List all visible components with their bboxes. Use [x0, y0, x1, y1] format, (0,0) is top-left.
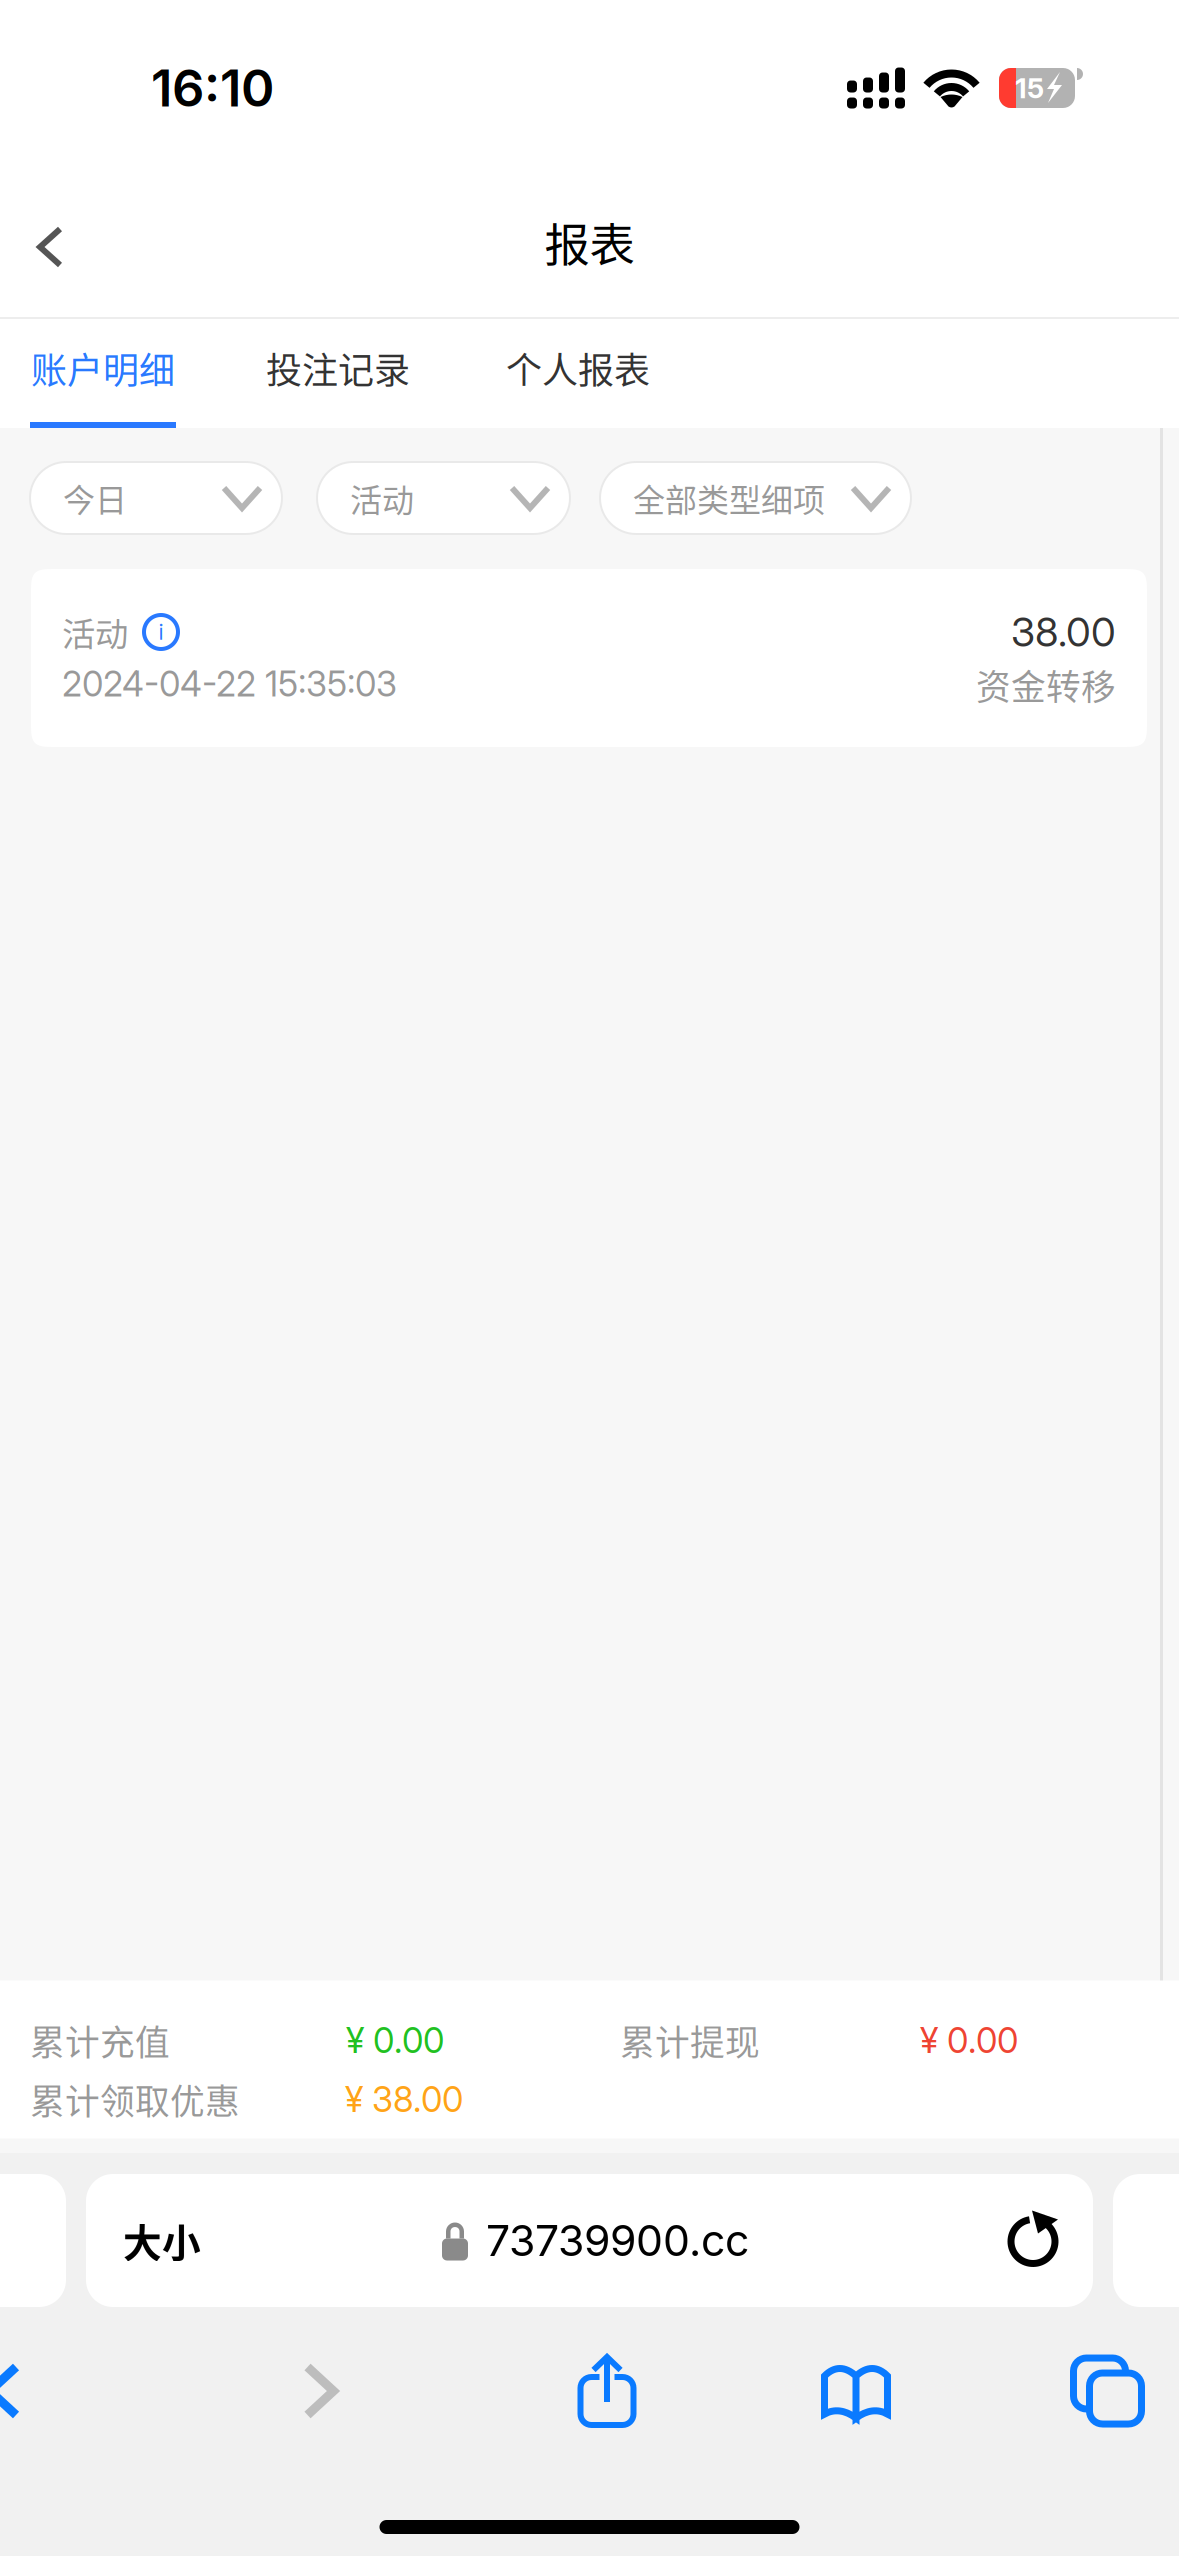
button[interactable]: Bookmarks — [731, 2331, 981, 2451]
staticText: 2024-04-22 15:35:03 — [62, 663, 397, 705]
staticText: 15 — [1015, 71, 1044, 105]
staticText: ¥ 38.00 — [345, 2078, 463, 2120]
staticText: 16:10 — [151, 57, 274, 119]
staticText: 个人报表 — [506, 342, 650, 394]
button[interactable]: 投注记录 — [265, 319, 411, 428]
button[interactable]: 账户明细 — [30, 319, 176, 428]
button[interactable]: Share — [483, 2331, 731, 2451]
button[interactable]: Back — [0, 197, 100, 297]
staticText: 全部类型细项 — [633, 475, 825, 521]
button[interactable]: Forward — [158, 2331, 483, 2451]
staticText: ¥ 0.00 — [920, 2019, 1018, 2061]
staticText: 资金转移 — [976, 660, 1116, 710]
staticText: 大小 — [123, 2212, 201, 2268]
staticText: 累计提现 — [620, 2015, 760, 2066]
staticText: 活动 — [350, 475, 414, 521]
staticText: 累计领取优惠 — [30, 2074, 240, 2125]
staticText: ¥ 0.00 — [346, 2019, 444, 2061]
staticText: 今日 — [63, 475, 127, 521]
button[interactable]: 个人报表 — [505, 319, 651, 428]
button[interactable]: 大小 — [86, 2174, 1093, 2307]
staticText: 累计充值 — [30, 2015, 170, 2066]
staticText: 活动 — [62, 608, 128, 656]
button[interactable]: Tabs — [981, 2331, 1179, 2451]
staticText: 报表 — [544, 209, 634, 275]
button[interactable]: Back — [0, 2331, 158, 2451]
staticText: i — [158, 619, 163, 645]
staticText: 投注记录 — [266, 342, 410, 394]
staticText: 73739900.cc — [486, 2215, 749, 2266]
button[interactable]: 全部类型细项 — [600, 462, 911, 534]
staticText: 账户明细 — [31, 342, 175, 394]
button[interactable]: 今日 — [30, 462, 282, 534]
button[interactable]: 活动 — [317, 462, 570, 534]
staticText: 38.00 — [1011, 608, 1116, 656]
